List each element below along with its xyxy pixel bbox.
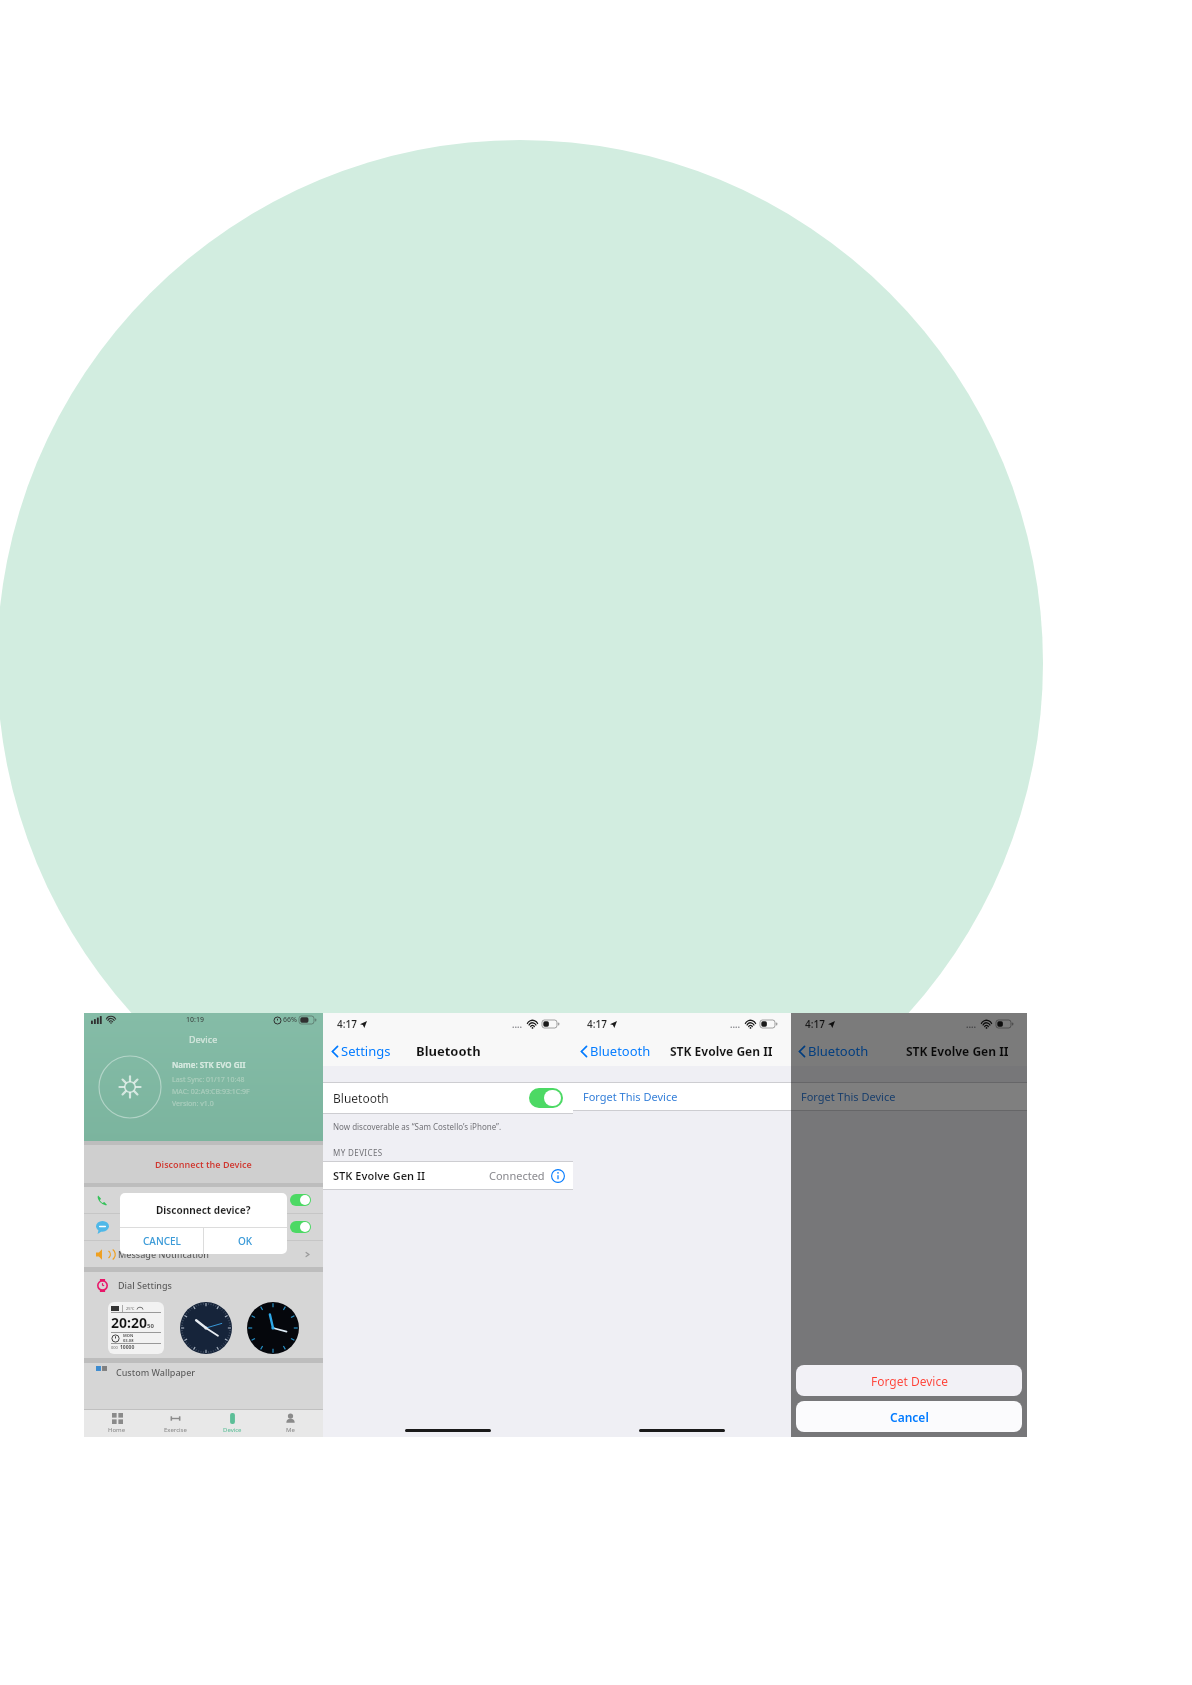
staticText: Connected [489,1168,545,1183]
staticText: 4:17 [805,1017,825,1031]
staticText: Disconnect the Device [155,1158,252,1170]
staticText: Custom Wallpaper [116,1366,196,1378]
staticText: Exercise [164,1426,187,1434]
staticText: Now discoverable as “Sam Costello’s iPho… [333,1121,502,1132]
staticText: OK [238,1234,253,1248]
button[interactable]: Dial Settings [96,1272,311,1298]
staticText: Name: STK EVO GII [172,1059,246,1070]
staticText: Bluetooth [590,1042,651,1060]
button[interactable]: Disconnect the Device [84,1145,323,1183]
staticText: 10:19 [186,1015,204,1025]
button[interactable] [96,1187,311,1213]
staticText: Forget Device [871,1373,948,1389]
staticText: Bluetooth [808,1042,869,1060]
staticText: Message Notification [118,1248,209,1260]
staticText: Settings [341,1042,391,1060]
staticText: 4:17 [587,1017,607,1031]
button[interactable]: Bluetooth [798,1042,869,1060]
button[interactable]: Bluetooth [333,1083,563,1113]
staticText: Dial Settings [118,1279,172,1291]
button[interactable]: Settings [331,1042,391,1060]
button[interactable]: Forget This Device [801,1083,1027,1110]
button[interactable]: Exercise [150,1410,200,1437]
button[interactable]: STK Evolve Gen II [333,1162,565,1189]
staticText: .... [512,1018,523,1030]
staticText: 000 [111,1345,118,1350]
button[interactable]: Me [265,1410,315,1437]
staticText: Disconnect device? [156,1203,251,1217]
staticText: 66% [283,1015,297,1025]
staticText: MON [123,1333,134,1338]
button[interactable]: CANCEL [120,1228,203,1254]
staticText: Bluetooth [333,1090,389,1106]
staticText: Me [286,1426,295,1434]
button[interactable]: Forget This Device [583,1083,791,1110]
staticText: 4:17 [337,1017,357,1031]
staticText: STK Evolve Gen II [333,1168,426,1183]
staticText: 03-08 [123,1338,134,1343]
button[interactable]: Bluetooth [580,1042,651,1060]
staticText: 50 [147,1322,154,1330]
staticText: 10000 [120,1344,135,1351]
staticText: STK Evolve Gen II [906,1043,1009,1059]
staticText: 25℃ [126,1306,135,1311]
staticText: Bluetooth [416,1042,481,1060]
button[interactable]: Message Notification [96,1241,311,1267]
staticText: Device [189,1033,218,1045]
staticText: Version: v1.0 [172,1099,214,1109]
button[interactable]: Home [92,1410,142,1437]
staticText: STK Evolve Gen II [670,1043,773,1059]
staticText: Device [223,1426,242,1434]
button[interactable]: Cancel [796,1401,1022,1432]
staticText: Home [108,1426,126,1434]
staticText: 20:20 [111,1313,147,1332]
staticText: MY DEVICES [333,1147,383,1158]
button[interactable] [96,1214,311,1240]
button[interactable]: More Info [551,1169,565,1183]
staticText: CANCEL [143,1234,181,1248]
staticText: Forget This Device [583,1089,678,1104]
staticText: MAC: 02:A9:CB:93:1C:9F [172,1087,250,1097]
button[interactable]: Device [207,1410,257,1437]
button[interactable]: Forget Device [796,1365,1022,1396]
staticText: .... [730,1018,741,1030]
staticText: Last Sync: 01/17 10:48 [172,1075,245,1085]
button[interactable]: OK [204,1228,287,1254]
staticText: Forget This Device [801,1089,896,1104]
staticText: Cancel [890,1409,929,1425]
staticText: .... [966,1018,977,1030]
